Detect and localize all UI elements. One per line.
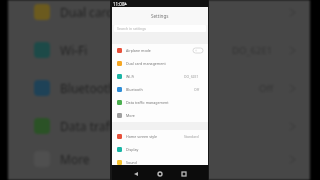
staticText: Home screen style [126, 134, 158, 139]
staticText: Data traffic [60, 118, 123, 134]
staticText: Wi-Fi [126, 74, 135, 79]
staticText: Off [194, 87, 199, 92]
button[interactable]: Home screen style [112, 130, 208, 143]
button[interactable]: Data traffic management [112, 96, 208, 109]
staticText: Airplane mode [126, 48, 151, 53]
staticText: More [126, 113, 135, 118]
button[interactable]: Dual card m [8, 0, 310, 31]
button[interactable]: Recents [178, 168, 190, 180]
staticText: 11:08 [113, 1, 125, 7]
button[interactable]: Dual card management [112, 57, 208, 70]
staticText: Dual card management [126, 61, 166, 66]
button[interactable]: Back [130, 168, 142, 180]
staticText: Data traffic management [126, 100, 169, 105]
staticText: Wi-Fi [60, 42, 88, 58]
button[interactable]: Wi-Fi [112, 70, 208, 83]
button[interactable]: Bluetooth [8, 69, 310, 107]
button[interactable]: More [8, 145, 310, 173]
staticText: More [60, 151, 90, 167]
button[interactable]: Bluetooth [112, 83, 208, 96]
button[interactable]: Data traffic [8, 107, 310, 145]
staticText: DO_62E1 [184, 74, 199, 79]
staticText: Display [126, 147, 139, 152]
staticText: Search in settings [117, 26, 147, 31]
button[interactable]: Airplane mode [112, 44, 208, 57]
button[interactable]: Sound [112, 156, 208, 169]
staticText: Settings [151, 13, 169, 19]
staticText: Dual card m [60, 4, 129, 20]
staticText: Bluetooth [60, 80, 116, 96]
button[interactable]: More [112, 109, 208, 122]
button[interactable]: Search in settings [114, 25, 206, 32]
staticText: Standard [184, 134, 199, 139]
staticText: Sound [126, 160, 137, 165]
button[interactable]: Wi-Fi [8, 31, 310, 69]
staticText: Bluetooth [126, 87, 143, 92]
button[interactable]: Display [112, 143, 208, 156]
button[interactable]: Home [154, 168, 166, 180]
button[interactable]: Airplane mode toggle [193, 48, 203, 53]
